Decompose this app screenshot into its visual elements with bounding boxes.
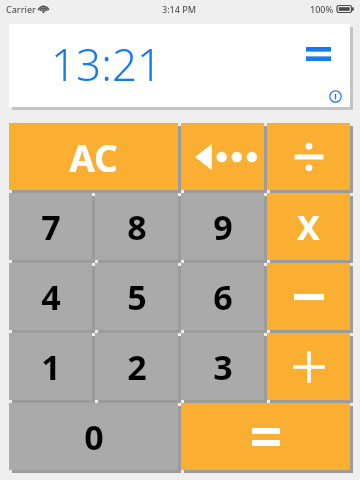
button[interactable]: 5 — [95, 263, 178, 330]
staticText: 100% — [310, 3, 334, 15]
staticText: X — [297, 204, 320, 250]
button[interactable]: 4 — [9, 263, 92, 330]
button[interactable]: 3 — [181, 333, 264, 400]
button[interactable]: Divide — [267, 123, 350, 190]
button[interactable]: 2 — [95, 333, 178, 400]
staticText: 4 — [41, 274, 61, 320]
button[interactable]: Equals — [306, 47, 331, 61]
button[interactable]: X — [267, 193, 350, 260]
button[interactable]: Minus — [267, 263, 350, 330]
staticText: 2 — [127, 344, 147, 390]
button[interactable]: Equals — [181, 403, 350, 470]
button[interactable]: 13:21 — [9, 24, 350, 107]
staticText: AC — [69, 132, 118, 182]
button[interactable]: 0 — [9, 403, 178, 470]
staticText: 8 — [127, 204, 147, 250]
button[interactable]: Plus — [267, 333, 350, 400]
staticText: 9 — [213, 204, 233, 250]
button[interactable]: AC — [9, 123, 178, 190]
button[interactable]: 8 — [95, 193, 178, 260]
staticText: 13:21 — [51, 34, 163, 94]
button[interactable]: Info — [329, 90, 342, 103]
staticText: 1 — [41, 344, 61, 390]
staticText: 6 — [213, 274, 233, 320]
button[interactable]: 9 — [181, 193, 264, 260]
staticText: 3 — [213, 344, 233, 390]
staticText: 0 — [84, 414, 104, 460]
button[interactable]: Backspace — [181, 123, 264, 190]
staticText: 5 — [127, 274, 147, 320]
button[interactable]: 6 — [181, 263, 264, 330]
button[interactable]: 7 — [9, 193, 92, 260]
button[interactable]: 1 — [9, 333, 92, 400]
staticText: 3:14 PM — [162, 3, 196, 15]
staticText: 7 — [41, 204, 61, 250]
staticText: Carrier — [6, 3, 36, 15]
